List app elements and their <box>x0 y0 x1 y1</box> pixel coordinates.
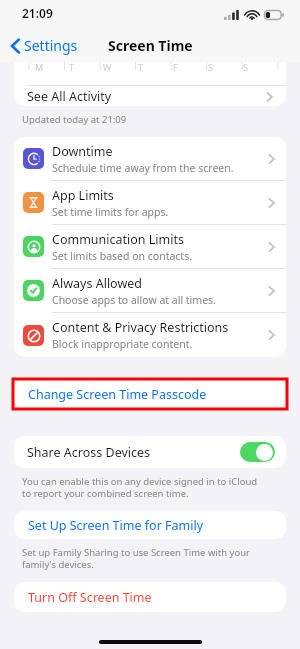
button[interactable]: Share Across Devices <box>14 436 286 468</box>
staticText: Set time limits for apps. <box>52 205 169 219</box>
staticText: Schedule time away from the screen. <box>52 161 234 175</box>
staticText: Change Screen Time Passcode <box>28 386 207 403</box>
staticText: Updated today at 21:09 <box>22 113 127 126</box>
staticText: Block inappropriate content. <box>52 337 193 351</box>
staticText: Settings <box>24 36 78 55</box>
staticText: F <box>173 62 178 73</box>
staticText: See All Activity <box>27 88 112 105</box>
button[interactable]: Communication Limits <box>14 225 286 268</box>
staticText: App Limits <box>52 187 114 204</box>
staticText: T <box>69 62 75 73</box>
staticText: Communication Limits <box>52 231 184 248</box>
button[interactable]: Share Across Devices toggle, on <box>240 442 275 462</box>
staticText: W <box>103 62 112 73</box>
staticText: Set limits based on contacts. <box>52 249 192 263</box>
button[interactable]: Turn Off Screen Time <box>14 582 286 612</box>
staticText: You can enable this on any device signed… <box>22 475 258 500</box>
staticText: Downtime <box>52 143 113 160</box>
staticText: Screen Time <box>108 36 193 55</box>
staticText: Always Allowed <box>52 275 142 292</box>
staticText: Content & Privacy Restrictions <box>52 319 229 336</box>
staticText: T <box>138 62 144 73</box>
button[interactable]: Set Up Screen Time for Family <box>14 511 286 539</box>
staticText: S <box>243 62 248 73</box>
staticText: S <box>208 62 213 73</box>
staticText: Share Across Devices <box>27 444 151 461</box>
staticText: M <box>35 62 44 73</box>
button[interactable]: Always Allowed <box>14 269 286 312</box>
button[interactable]: Settings <box>9 32 80 59</box>
button[interactable]: Content & Privacy Restrictions <box>14 313 286 357</box>
button[interactable]: Downtime <box>14 137 286 180</box>
button[interactable]: Change Screen Time Passcode <box>14 380 286 408</box>
button[interactable]: See All Activity <box>14 85 286 106</box>
staticText: 21:09 <box>22 5 53 21</box>
button[interactable]: App Limits <box>14 181 286 224</box>
staticText: Choose apps to allow at all times. <box>52 293 216 307</box>
staticText: Turn Off Screen Time <box>28 589 152 606</box>
staticText: Set Up Screen Time for Family <box>28 517 204 534</box>
staticText: Set up Family Sharing to use Screen Time… <box>22 546 250 571</box>
